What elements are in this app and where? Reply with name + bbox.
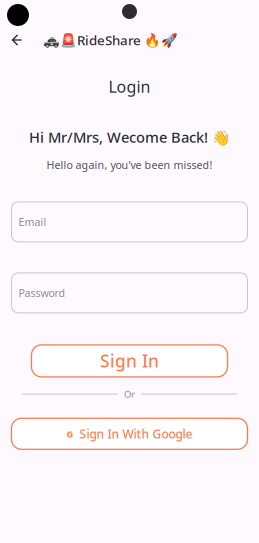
staticText: Sign In With Google [79, 426, 192, 442]
button[interactable]: G [11, 418, 247, 449]
staticText: Hi Mr/Mrs, Wecome Back! 👋 [29, 127, 230, 147]
staticText: Hello again, you've been missed! [46, 158, 212, 172]
staticText: Email [18, 215, 46, 229]
staticText: Login [108, 76, 150, 97]
staticText: Or [124, 388, 135, 400]
staticText: G [66, 428, 73, 440]
button[interactable]: Password [11, 273, 247, 313]
staticText: Password [18, 286, 65, 300]
button[interactable]: Sign In [31, 345, 227, 377]
staticText: 🚓🚨RideShare 🔥🚀 [43, 31, 178, 49]
button[interactable]: Back [6, 29, 28, 51]
staticText: Sign In [100, 349, 159, 372]
button[interactable]: Email [11, 202, 247, 242]
